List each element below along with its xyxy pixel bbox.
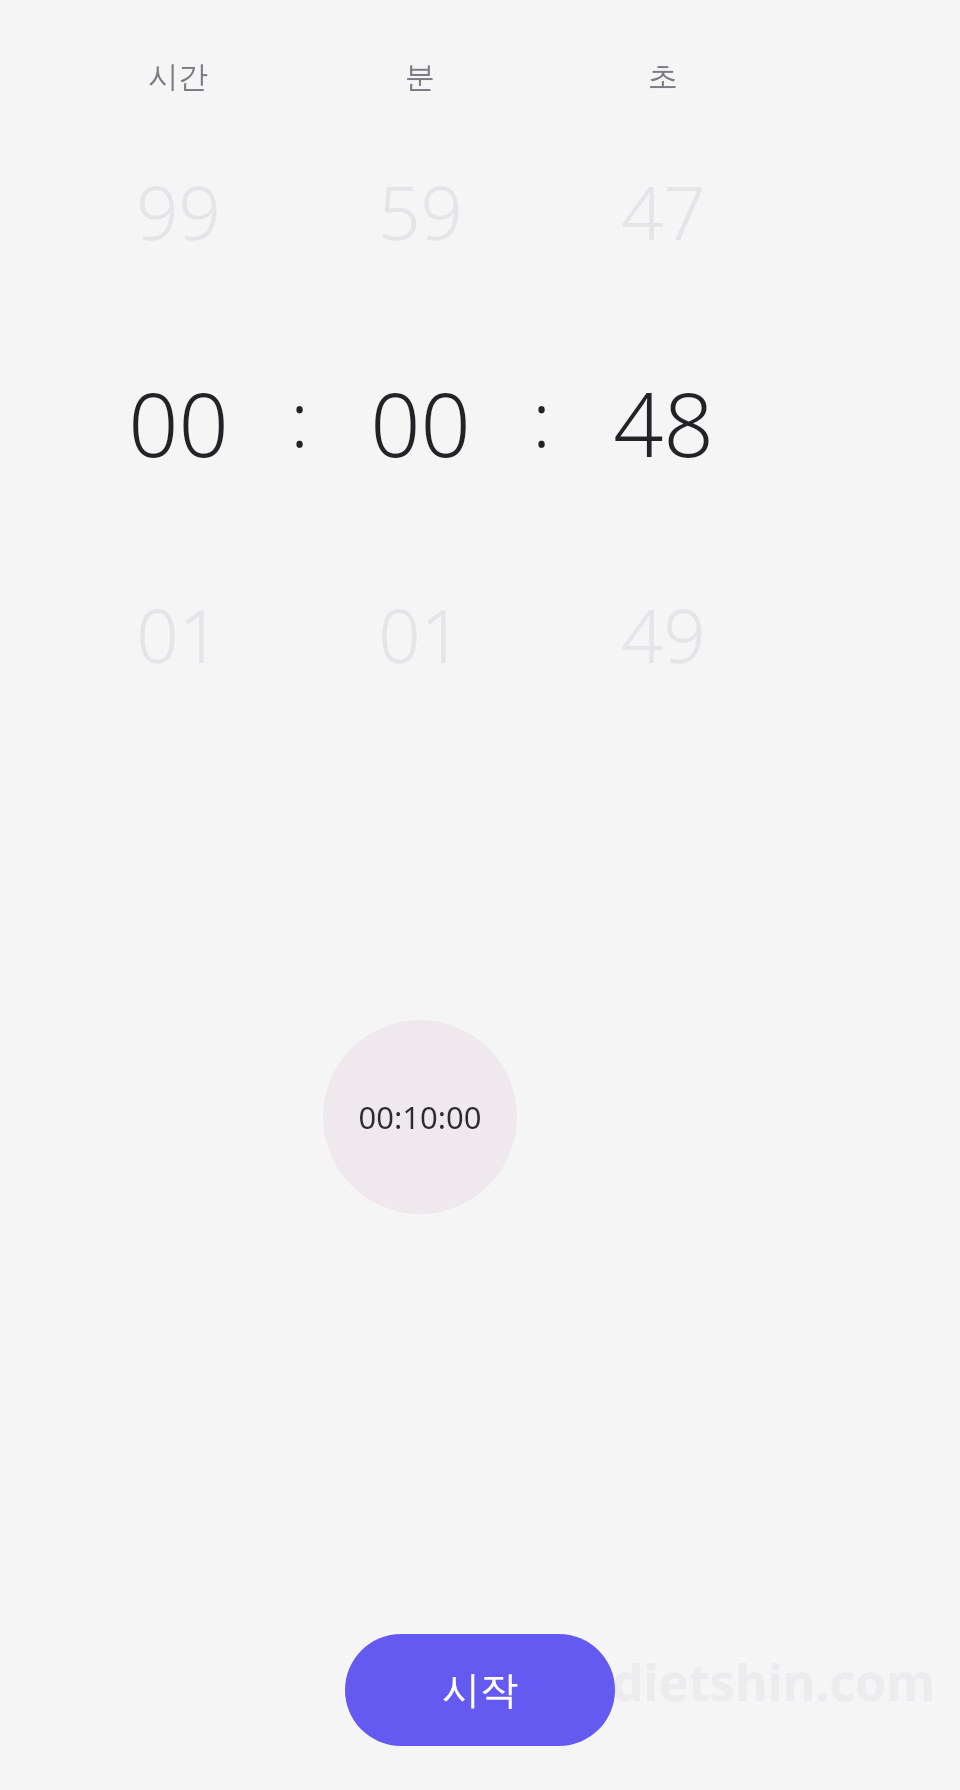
staticText: : [532,366,551,470]
button[interactable]: 00:10:00 [323,1020,517,1214]
staticText: 01 [378,584,463,685]
staticText: dietshin.com [612,1648,935,1716]
staticText: 99 [136,161,221,262]
button[interactable]: 00 [78,348,278,498]
button[interactable]: 48 [563,348,763,498]
staticText: 01 [136,584,221,685]
staticText: 47 [621,161,706,262]
staticText: : [290,366,309,470]
staticText: 시간 [148,58,208,96]
staticText: 00 [128,363,229,483]
button[interactable]: 00 [320,348,520,498]
staticText: 59 [378,161,463,262]
staticText: 00:10:00 [358,1096,482,1138]
staticText: 시작 [442,1666,518,1714]
staticText: 49 [621,584,706,685]
staticText: 48 [613,363,714,483]
staticText: 분 [405,58,435,96]
staticText: 초 [648,58,678,96]
button[interactable]: 시작 [345,1634,615,1746]
staticText: 00 [370,363,471,483]
